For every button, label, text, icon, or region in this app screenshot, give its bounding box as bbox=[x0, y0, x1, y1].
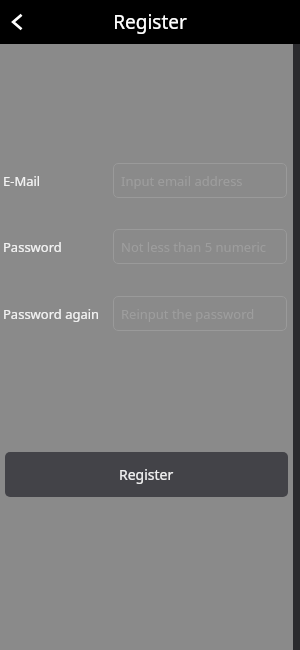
staticText: Password bbox=[3, 238, 62, 256]
staticText: Reinput the password bbox=[121, 305, 255, 323]
button[interactable]: Input email address bbox=[113, 163, 287, 198]
staticText: Input email address bbox=[121, 172, 243, 190]
button[interactable]: Register bbox=[5, 452, 288, 497]
button[interactable]: Not less than 5 numeric bbox=[113, 229, 287, 264]
staticText: Register bbox=[119, 465, 174, 484]
staticText: Not less than 5 numeric bbox=[121, 238, 267, 256]
button[interactable]: Back bbox=[0, 5, 34, 39]
staticText: E-Mail bbox=[3, 172, 41, 190]
staticText: Password again bbox=[3, 305, 100, 323]
button[interactable]: Reinput the password bbox=[113, 296, 287, 331]
staticText: Register bbox=[113, 9, 187, 35]
